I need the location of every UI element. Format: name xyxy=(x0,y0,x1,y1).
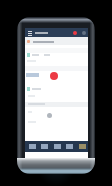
button[interactable]: Alerts xyxy=(73,31,77,35)
button[interactable]: Menu xyxy=(27,30,33,36)
button[interactable]: Tab 1 xyxy=(26,141,38,152)
button[interactable] xyxy=(27,86,88,91)
button[interactable]: Tab 3 xyxy=(51,141,63,152)
button[interactable]: Tab 2 xyxy=(38,141,50,152)
button[interactable]: Add xyxy=(50,72,58,80)
button[interactable] xyxy=(27,52,88,58)
button[interactable] xyxy=(27,38,88,45)
button[interactable]: Options xyxy=(47,113,52,118)
button[interactable]: Tab 4 xyxy=(63,141,75,152)
button[interactable]: Tab 5 xyxy=(76,141,88,152)
